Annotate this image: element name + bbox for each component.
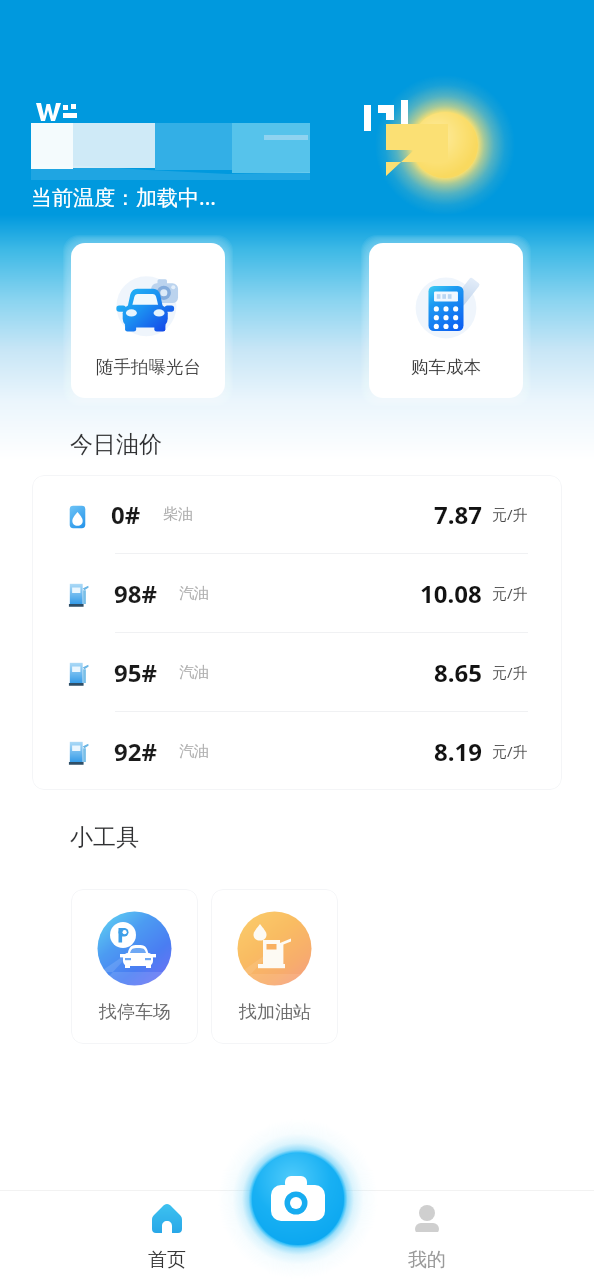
button[interactable]: 0# [32, 475, 562, 554]
staticText: 8.65 [434, 656, 482, 689]
staticText: 汽油 [179, 742, 209, 761]
staticText: 当前温度：加载中... [31, 183, 216, 212]
staticText: 随手拍曝光台 [96, 356, 201, 378]
staticText: 92# [114, 735, 157, 768]
button[interactable]: 我的 [372, 1193, 482, 1278]
button[interactable]: Take photo [218, 1119, 378, 1279]
button[interactable]: 购车成本 [369, 243, 523, 398]
button[interactable]: 95# [32, 633, 562, 712]
staticText: 95# [114, 656, 157, 689]
button[interactable]: 找加油站 [211, 889, 338, 1044]
staticText: 98# [114, 577, 157, 610]
staticText: 元/升 [492, 662, 528, 682]
staticText: 元/升 [492, 504, 528, 524]
staticText: 元/升 [492, 583, 528, 603]
button[interactable]: 随手拍曝光台 [71, 243, 225, 398]
staticText: 找加油站 [239, 1001, 311, 1024]
button[interactable]: 92# [32, 712, 562, 790]
staticText: 小工具 [70, 823, 139, 852]
staticText: 0# [111, 498, 141, 531]
staticText: 今日油价 [70, 430, 162, 459]
button[interactable]: 98# [32, 554, 562, 633]
staticText: 汽油 [179, 584, 209, 603]
button[interactable]: 首页 [112, 1193, 222, 1278]
staticText: 汽油 [179, 663, 209, 682]
staticText: 我的 [408, 1248, 446, 1272]
staticText: 首页 [148, 1248, 186, 1272]
staticText: 元/升 [492, 741, 528, 761]
staticText: 找停车场 [99, 1001, 171, 1024]
staticText: 购车成本 [411, 356, 481, 378]
staticText: 7.87 [434, 498, 482, 531]
staticText: 8.19 [434, 735, 482, 768]
staticText: 柴油 [163, 505, 193, 524]
button[interactable]: 找停车场 [71, 889, 198, 1044]
staticText: 10.08 [420, 577, 482, 610]
